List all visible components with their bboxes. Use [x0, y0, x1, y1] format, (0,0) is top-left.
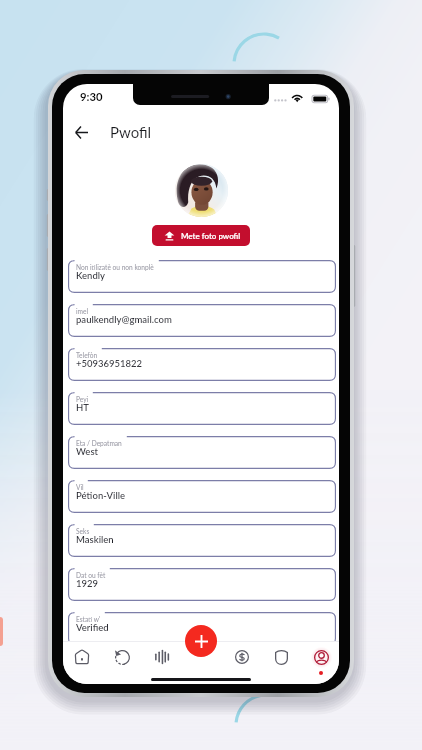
staticText: Eta / Depatman	[76, 439, 122, 447]
button[interactable]: Non itilizatè ou non konplè	[68, 260, 336, 293]
button[interactable]: Payments	[226, 641, 258, 673]
button[interactable]: Estati w'	[68, 612, 336, 645]
button[interactable]: Account	[305, 641, 337, 673]
staticText: Mete foto pwofil	[181, 231, 241, 241]
button[interactable]: History	[106, 641, 138, 673]
button[interactable]: Profile photo	[175, 164, 228, 217]
staticText: Verified	[76, 622, 109, 633]
staticText: Peyi	[76, 395, 89, 403]
button[interactable]: Home	[66, 641, 98, 673]
staticText: Kendly	[76, 270, 106, 281]
button[interactable]: Audio	[146, 641, 178, 673]
button[interactable]: Telefòn	[68, 348, 336, 381]
button[interactable]: Seks	[68, 524, 336, 557]
staticText: 9:30	[80, 90, 103, 104]
staticText: Non itilizatè ou non konplè	[76, 263, 154, 271]
staticText: Estati w'	[76, 615, 101, 623]
button[interactable]: imel	[68, 304, 336, 337]
staticText: HT	[76, 402, 89, 413]
button[interactable]: Dat ou fèt	[68, 568, 336, 601]
staticText: Dat ou fèt	[76, 571, 106, 579]
button[interactable]: Peyi	[68, 392, 336, 425]
staticText: Pétion-Ville	[76, 490, 126, 501]
staticText: +50936951822	[76, 358, 143, 369]
button[interactable]: Mete foto pwofil	[152, 225, 250, 246]
button[interactable]: Back	[69, 120, 93, 144]
staticText: imel	[76, 307, 89, 315]
staticText: 1929	[76, 578, 99, 589]
staticText: Vil	[76, 483, 84, 491]
staticText: Telefòn	[76, 351, 98, 359]
button[interactable]: Security	[265, 641, 297, 673]
staticText: paulkendly@gmail.com	[76, 314, 172, 325]
button[interactable]: Vil	[68, 480, 336, 513]
staticText: Seks	[76, 527, 90, 535]
staticText: West	[76, 446, 99, 457]
staticText: Pwofil	[110, 123, 152, 141]
button[interactable]: Eta / Depatman	[68, 436, 336, 469]
button[interactable]: Add	[185, 625, 217, 657]
staticText: Maskilen	[76, 534, 114, 545]
